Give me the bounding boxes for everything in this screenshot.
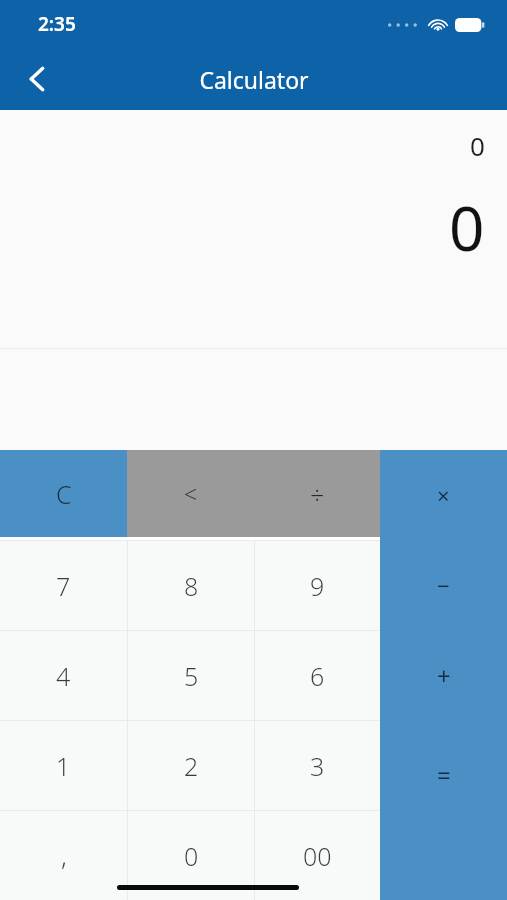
button[interactable]: + xyxy=(380,630,507,720)
staticText: C xyxy=(56,477,72,511)
button[interactable]: 6 xyxy=(255,631,380,720)
staticText: + xyxy=(437,659,451,692)
staticText: − xyxy=(437,570,450,600)
button[interactable]: × xyxy=(380,450,507,540)
staticText: < xyxy=(184,478,198,509)
button[interactable]: 3 xyxy=(255,721,380,810)
staticText: 5 xyxy=(184,659,199,693)
staticText: 0 xyxy=(184,839,199,873)
button[interactable]: 8 xyxy=(128,541,254,630)
staticText: Calculator xyxy=(199,64,309,95)
button[interactable]: ÷ xyxy=(254,450,380,537)
staticText: 8 xyxy=(184,569,199,603)
button[interactable]: = xyxy=(380,720,507,900)
button[interactable]: − xyxy=(380,540,507,630)
staticText: 1 xyxy=(56,749,71,783)
button[interactable]: 5 xyxy=(128,631,254,720)
button[interactable]: 2 xyxy=(128,721,254,810)
staticText: ÷ xyxy=(310,477,325,511)
button[interactable]: < xyxy=(127,450,254,537)
staticText: 7 xyxy=(56,569,71,603)
button[interactable]: , xyxy=(0,811,127,900)
staticText: 00 xyxy=(303,839,332,873)
button[interactable]: C xyxy=(0,450,127,537)
button[interactable]: 00 xyxy=(255,811,380,900)
staticText: 9 xyxy=(310,569,325,603)
staticText: 0 xyxy=(449,185,485,269)
button[interactable]: 0 xyxy=(128,811,254,900)
button[interactable]: 4 xyxy=(0,631,127,720)
button[interactable]: 7 xyxy=(0,541,127,630)
staticText: 6 xyxy=(310,659,325,693)
button[interactable]: 9 xyxy=(255,541,380,630)
button[interactable]: Back xyxy=(0,48,74,110)
button[interactable]: 1 xyxy=(0,721,127,810)
staticText: 4 xyxy=(56,659,71,693)
staticText: , xyxy=(61,838,67,873)
staticText: 0 xyxy=(470,128,485,163)
staticText: 2 xyxy=(184,749,199,783)
staticText: 3 xyxy=(310,749,325,783)
staticText: = xyxy=(437,758,451,791)
staticText: 2:35 xyxy=(38,11,76,37)
staticText: × xyxy=(437,480,450,510)
